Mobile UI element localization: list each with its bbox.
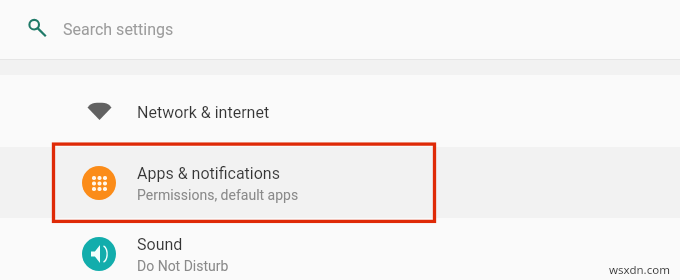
staticText: wsxdn.com xyxy=(609,262,670,278)
staticText: Search settings xyxy=(63,20,174,39)
other: Search xyxy=(26,19,47,40)
staticText: Do Not Disturb xyxy=(137,258,229,274)
staticText: Apps & notifications xyxy=(137,164,280,183)
button[interactable]: Wi-Fi xyxy=(0,75,680,147)
staticText: Permissions, default apps xyxy=(137,187,299,203)
button[interactable]: Apps & notifications xyxy=(0,147,680,218)
other: Wi-Fi xyxy=(87,102,112,120)
staticText: Sound xyxy=(137,235,183,254)
staticText: Network & internet xyxy=(137,103,270,122)
button[interactable]: Search xyxy=(0,0,680,59)
button[interactable]: Sound xyxy=(0,218,680,280)
